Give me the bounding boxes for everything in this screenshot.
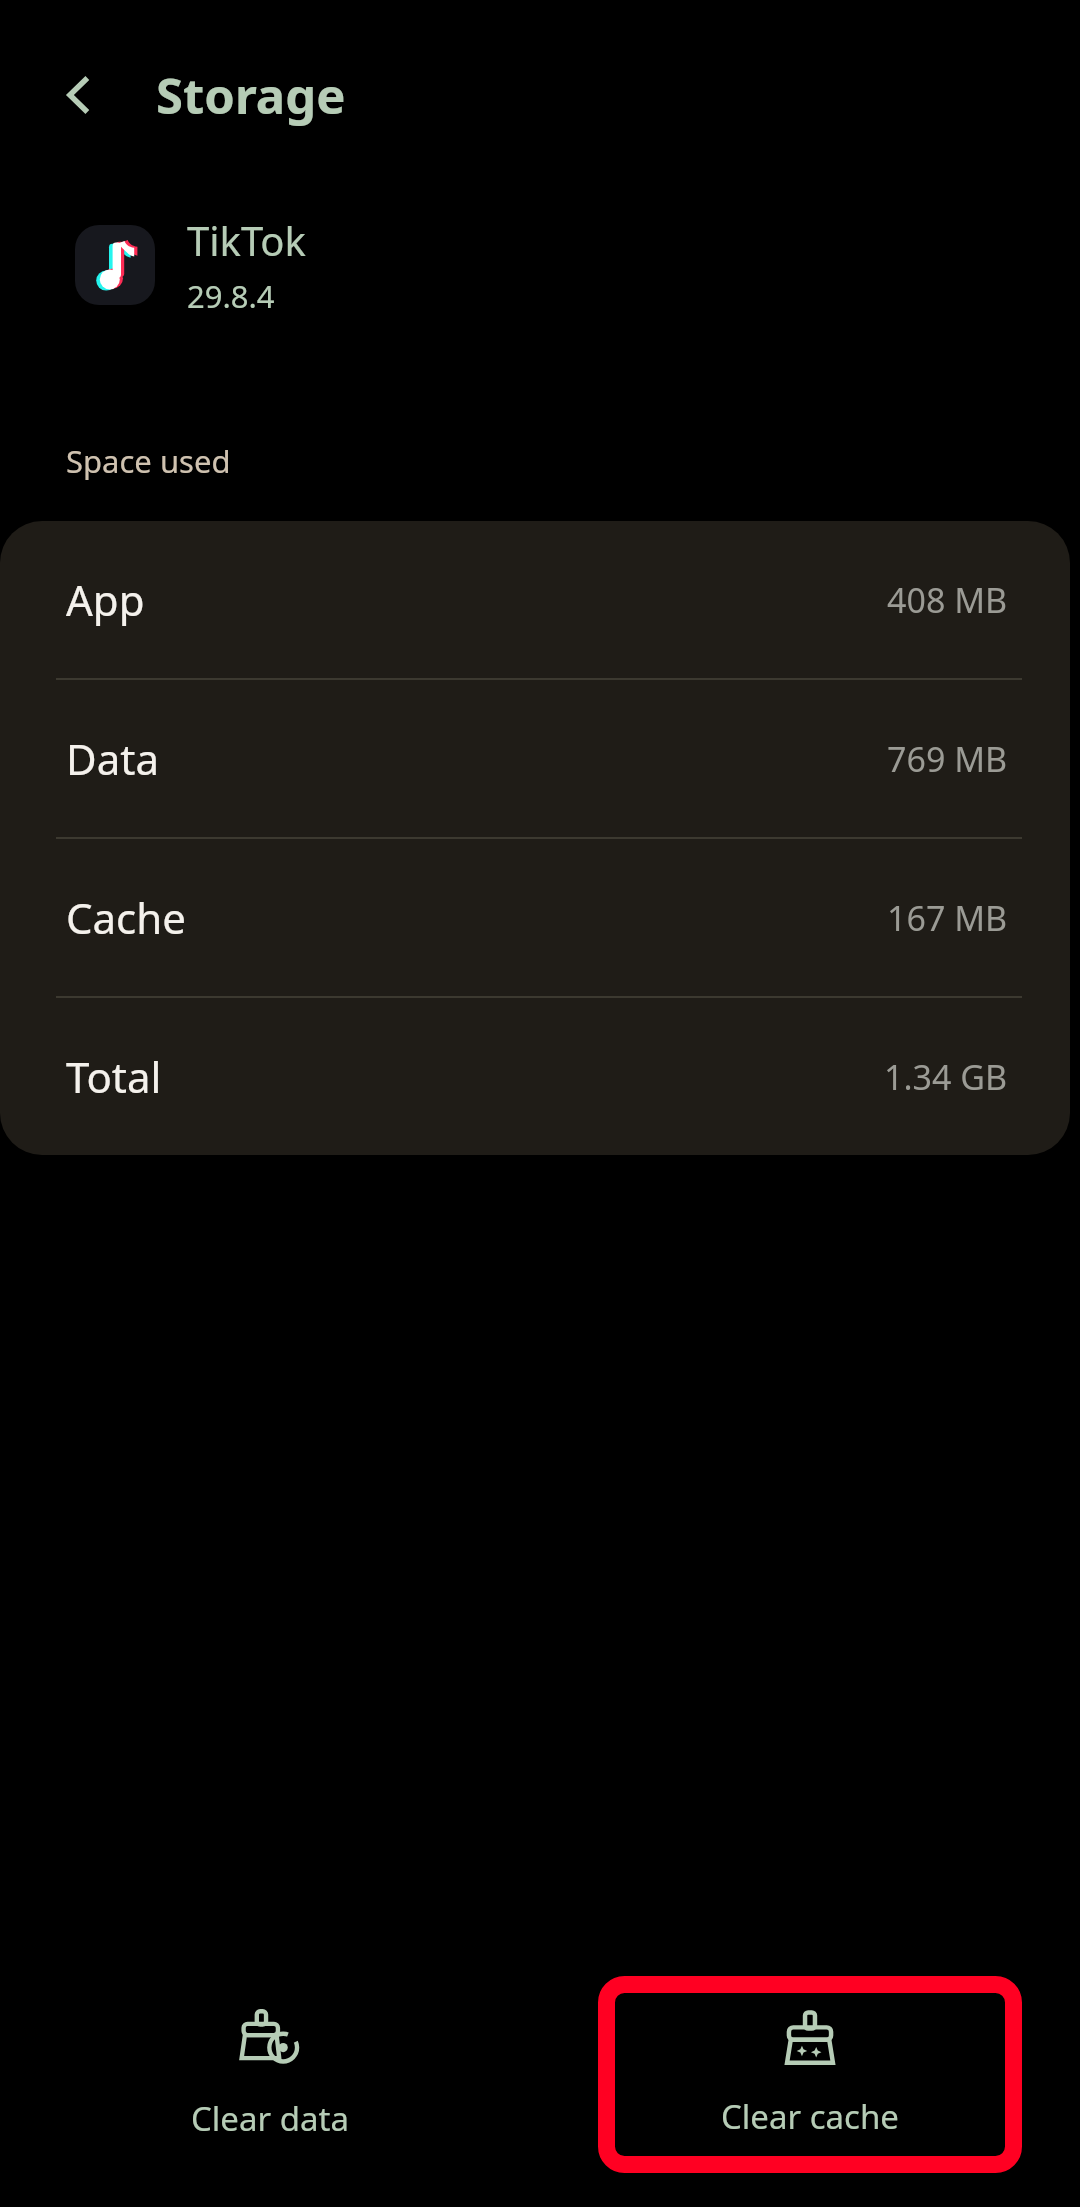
staticText: Total (66, 1048, 162, 1105)
button[interactable]: Clear data (0, 1942, 540, 2207)
staticText: 408 MB (887, 577, 1008, 623)
button[interactable]: Total (0, 998, 1070, 1155)
staticText: TikTok (187, 213, 306, 267)
staticText: 29.8.4 (187, 275, 275, 317)
staticText: Clear cache (721, 2094, 899, 2139)
staticText: Clear data (191, 2096, 349, 2141)
staticText: App (66, 571, 145, 628)
button[interactable]: Back (44, 59, 116, 131)
button[interactable]: Clear cache (598, 1976, 1022, 2173)
button[interactable]: TikTok (0, 190, 1080, 340)
staticText: Storage (156, 62, 346, 129)
staticText: 769 MB (887, 736, 1008, 782)
staticText: Space used (66, 440, 231, 482)
button[interactable]: Data (0, 680, 1070, 837)
button[interactable]: App (0, 521, 1070, 678)
staticText: 167 MB (887, 895, 1008, 941)
button[interactable]: Cache (0, 839, 1070, 996)
staticText: Data (66, 730, 159, 787)
staticText: Cache (66, 889, 186, 946)
staticText: 1.34 GB (884, 1054, 1008, 1100)
